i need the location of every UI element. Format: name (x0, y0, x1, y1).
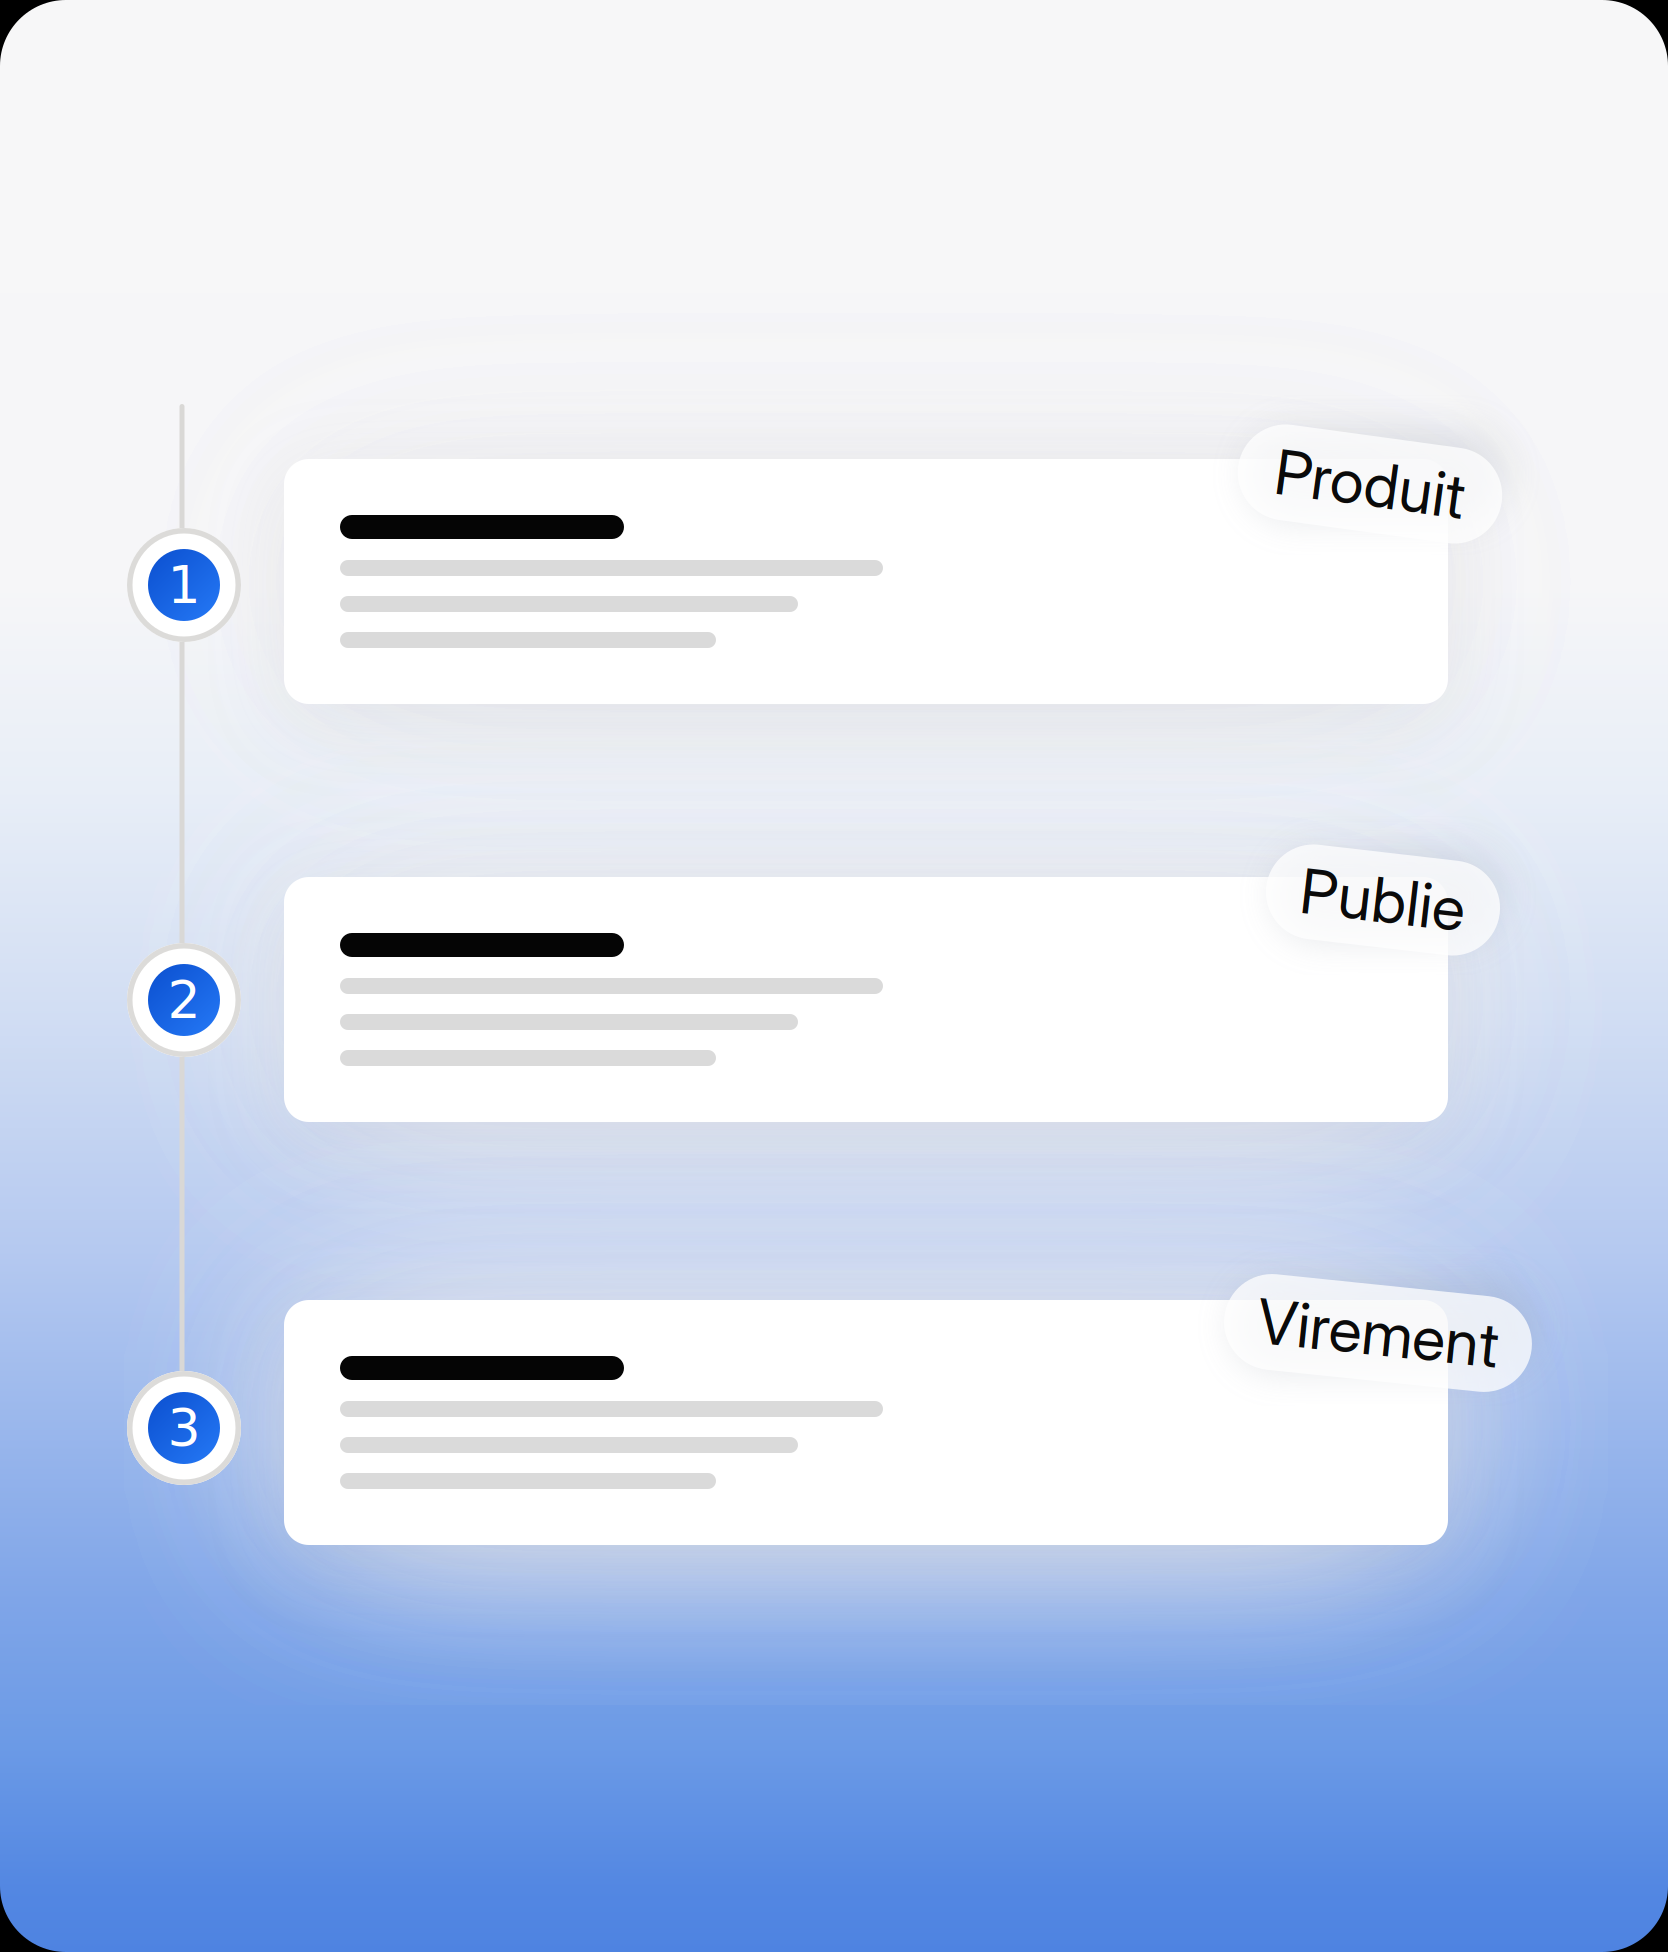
button[interactable] (284, 1300, 1448, 1545)
staticText: Produit (1274, 447, 1465, 521)
button[interactable]: Produit (1237, 436, 1503, 532)
button[interactable] (284, 459, 1448, 704)
button[interactable] (284, 877, 1448, 1122)
staticText: Publie (1300, 863, 1466, 937)
staticText: Virement (1257, 1296, 1499, 1370)
button[interactable]: Publie (1265, 852, 1500, 947)
staticText: 2 (167, 970, 200, 1030)
staticText: 1 (167, 555, 200, 615)
staticText: 3 (167, 1398, 200, 1458)
button[interactable]: Virement (1223, 1285, 1532, 1381)
